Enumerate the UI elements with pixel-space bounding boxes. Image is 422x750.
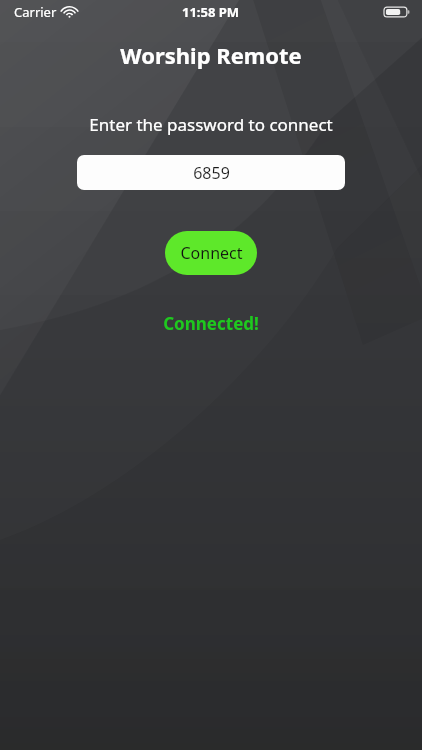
staticText: Carrier [14,3,57,21]
staticText: 6859 [193,162,230,184]
staticText: 11:58 PM [182,3,240,21]
staticText: Connected! [163,312,259,335]
staticText: Worship Remote [120,40,302,70]
staticText: Connect [180,242,243,264]
button[interactable]: Password field [77,155,345,190]
button[interactable]: Connect [165,231,257,275]
staticText: Enter the password to connect [89,113,333,136]
